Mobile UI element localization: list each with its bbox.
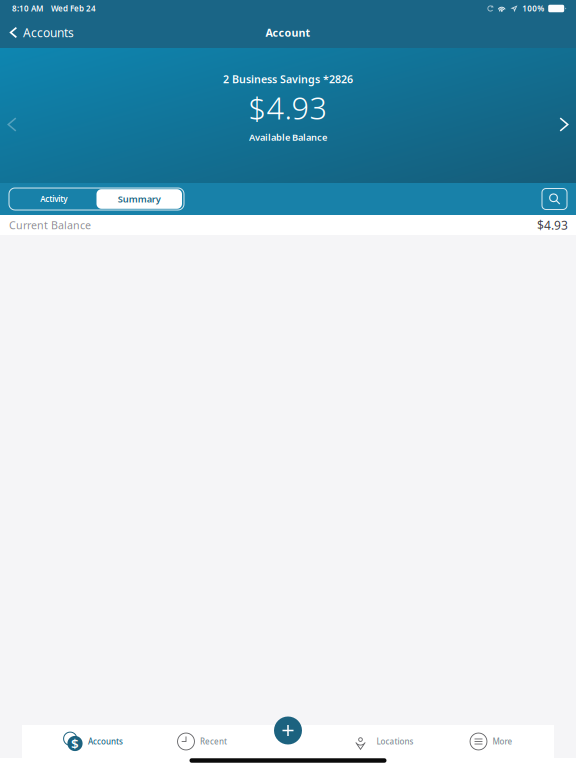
button[interactable]: Accounts (0, 20, 84, 44)
staticText: $ (71, 735, 79, 752)
staticText: 2 Business Savings *2826 (223, 72, 353, 86)
button[interactable]: Search (542, 188, 567, 209)
button[interactable]: Recent (144, 726, 260, 757)
staticText: 8:10 AM (12, 3, 43, 14)
staticText: Accounts (23, 24, 74, 40)
staticText: Available Balance (249, 131, 327, 143)
button[interactable]: Previous account (0, 102, 24, 146)
staticText: 100% (522, 3, 544, 14)
staticText: $4.93 (248, 87, 327, 128)
staticText: Current Balance (9, 218, 91, 232)
button[interactable]: Next account (552, 102, 576, 146)
staticText: Activity (40, 194, 67, 204)
staticText: Recent (200, 736, 227, 747)
button[interactable]: Summary (96, 189, 182, 209)
staticText: More (492, 736, 512, 747)
staticText: Summary (118, 193, 161, 205)
button[interactable]: More (433, 726, 549, 757)
button[interactable]: Locations (325, 726, 441, 757)
button[interactable]: $ (35, 726, 151, 757)
staticText: $4.93 (537, 217, 568, 233)
button[interactable]: Activity (11, 189, 96, 209)
staticText: Account (265, 25, 310, 40)
staticText: Locations (376, 736, 413, 747)
staticText: Accounts (88, 736, 123, 747)
staticText: Wed Feb 24 (51, 3, 96, 14)
button[interactable]: Add (274, 716, 302, 744)
